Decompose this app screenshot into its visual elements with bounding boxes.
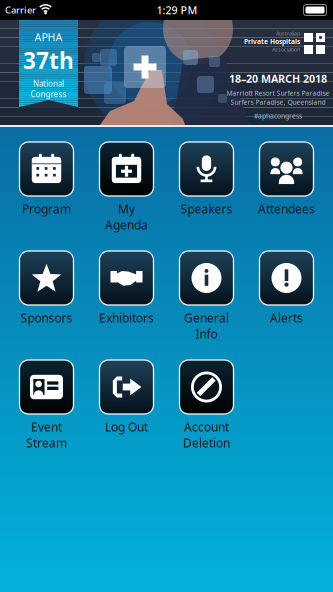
staticText: General (184, 310, 229, 326)
staticText: Surfers Paradise, Queensland (230, 98, 325, 107)
staticText: My (118, 201, 135, 217)
button[interactable]: Exhibitors (87, 251, 165, 343)
staticText: Info (195, 326, 217, 342)
staticText: Speakers (180, 201, 232, 217)
staticText: Deletion (183, 435, 230, 451)
staticText: 37th (23, 45, 74, 75)
button[interactable]: Log Out (87, 360, 165, 452)
button[interactable]: Attendees (247, 142, 325, 234)
staticText: Program (22, 201, 71, 217)
staticText: Sponsors (20, 310, 72, 326)
staticText: National (33, 78, 64, 89)
staticText: Attendees (258, 201, 315, 217)
staticText: Marriott Resort Surfers Paradise (226, 89, 329, 98)
staticText: Account (184, 419, 229, 435)
staticText: Congress (30, 89, 66, 99)
staticText: 1:29 PM (156, 3, 197, 17)
staticText: Exhibitors (99, 310, 154, 326)
button[interactable]: Event (7, 360, 85, 452)
button[interactable]: Account (167, 360, 245, 452)
button[interactable]: Speakers (167, 142, 245, 234)
staticText: Log Out (105, 419, 148, 435)
button[interactable]: General (167, 251, 245, 343)
button[interactable]: Program (7, 142, 85, 234)
staticText: Carrier (5, 4, 36, 16)
staticText: Association (272, 46, 300, 53)
staticText: Agenda (105, 217, 148, 233)
staticText: Alerts (270, 310, 303, 326)
staticText: Stream (26, 435, 67, 451)
staticText: Australian (276, 30, 300, 37)
button[interactable]: Alerts (247, 251, 325, 343)
staticText: Event (31, 419, 62, 435)
button[interactable]: Sponsors (7, 251, 85, 343)
staticText: #aphacongress (254, 111, 302, 120)
staticText: 18–20 MARCH 2018 (229, 72, 327, 86)
button[interactable]: My (87, 142, 165, 234)
staticText: Private Hospitals (244, 37, 300, 46)
staticText: APHA (34, 30, 62, 44)
